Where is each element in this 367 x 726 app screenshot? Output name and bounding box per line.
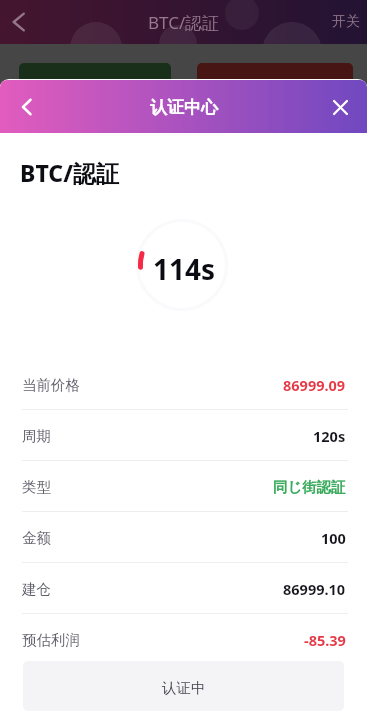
button[interactable]: Buy up	[19, 63, 171, 101]
staticText: 同じ街認証	[273, 478, 346, 496]
button[interactable]: 金额	[0, 512, 367, 563]
button[interactable]: 预估利润	[0, 614, 367, 665]
staticText: 开关	[332, 13, 360, 31]
button[interactable]: 开关	[332, 13, 360, 31]
staticText: 114s	[153, 250, 216, 288]
button[interactable]: Close	[322, 89, 358, 125]
staticText: 100	[321, 528, 346, 548]
button[interactable]: 周期	[0, 410, 367, 461]
staticText: 当前价格	[22, 376, 80, 394]
staticText: 金额	[22, 529, 51, 547]
button[interactable]: 当前价格	[0, 359, 367, 410]
button[interactable]: 类型	[0, 461, 367, 512]
staticText: 预估利润	[22, 631, 80, 649]
button[interactable]: Back	[9, 89, 45, 125]
button[interactable]: Back	[2, 5, 36, 39]
button[interactable]: 认证中	[23, 661, 344, 711]
staticText: -85.39	[304, 630, 346, 650]
button[interactable]: Buy down	[197, 63, 353, 101]
staticText: 认证中	[162, 679, 206, 697]
button[interactable]: 建仓	[0, 563, 367, 614]
staticText: 建仓	[22, 580, 51, 598]
staticText: 周期	[22, 427, 51, 445]
staticText: 120s	[313, 426, 346, 446]
staticText: BTC/認証	[148, 11, 220, 34]
staticText: 类型	[22, 478, 51, 496]
staticText: 86999.09	[283, 375, 346, 395]
staticText: 86999.10	[283, 579, 346, 599]
staticText: 认证中心	[150, 97, 218, 118]
staticText: BTC/認証	[20, 157, 120, 188]
